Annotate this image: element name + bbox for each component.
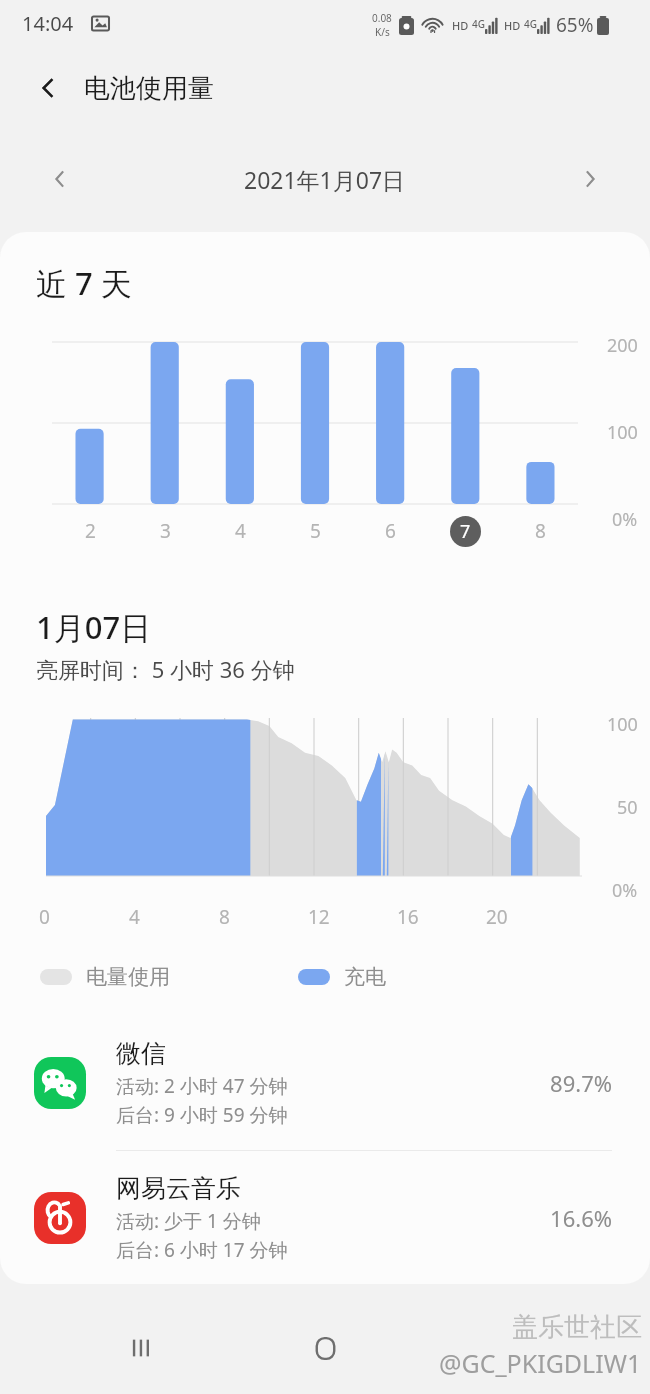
staticText: 16	[397, 904, 419, 930]
staticText: 电量使用	[86, 964, 170, 990]
staticText: HD	[452, 18, 469, 33]
staticText: 2021年1月07日	[244, 164, 406, 195]
staticText: 7	[460, 519, 471, 544]
staticText: 活动: 2 小时 47 分钟	[116, 1073, 288, 1099]
staticText: 5	[310, 518, 321, 544]
staticText: 20	[486, 904, 508, 930]
staticText: 电池使用量	[84, 72, 214, 105]
staticText: 8	[219, 904, 230, 930]
staticText: 1月07日	[36, 606, 152, 648]
staticText: 0.08	[372, 11, 392, 25]
button[interactable]: 前一天	[36, 155, 84, 203]
staticText: 4	[129, 904, 140, 930]
staticText: 4G	[472, 17, 485, 31]
staticText: 50	[617, 795, 638, 820]
staticText: 后台: 9 小时 59 分钟	[116, 1102, 288, 1128]
staticText: 亮屏时间： 5 小时 36 分钟	[36, 654, 295, 684]
staticText: @GC_PKIGDLIW1	[439, 1346, 642, 1380]
staticText: 4G	[524, 17, 537, 31]
staticText: 近 7 天	[36, 262, 132, 304]
staticText: 后台: 6 小时 17 分钟	[116, 1237, 288, 1263]
staticText: 100	[607, 712, 638, 737]
staticText: 微信	[116, 1038, 166, 1069]
button[interactable]: 返回	[26, 66, 70, 110]
staticText: 充电	[344, 964, 386, 990]
staticText: 14:04	[22, 10, 74, 37]
button[interactable]: 返回	[468, 1318, 548, 1378]
staticText: 活动: 少于 1 分钟	[116, 1208, 261, 1234]
button[interactable]: 主屏幕	[285, 1318, 365, 1378]
staticText: 3	[160, 518, 171, 544]
staticText: 0%	[612, 507, 638, 532]
staticText: 16.6%	[550, 1203, 612, 1233]
staticText: 网易云音乐	[116, 1173, 241, 1204]
staticText: 6	[385, 518, 396, 544]
staticText: HD	[504, 18, 521, 33]
staticText: 4	[235, 518, 246, 544]
staticText: 2	[85, 518, 96, 544]
staticText: 65%	[556, 12, 594, 38]
staticText: 0%	[612, 878, 638, 903]
button[interactable]: 后一天	[566, 155, 614, 203]
button[interactable]: 微信	[0, 1016, 650, 1150]
staticText: 100	[607, 420, 638, 445]
staticText: 200	[607, 333, 638, 358]
staticText: 12	[308, 904, 330, 930]
staticText: 0	[39, 904, 50, 930]
staticText: K/s	[375, 25, 390, 39]
button[interactable]: 网易云音乐	[0, 1151, 650, 1284]
staticText: 89.7%	[550, 1068, 612, 1098]
staticText: 8	[535, 518, 546, 544]
staticText: 盖乐世社区	[512, 1311, 642, 1344]
button[interactable]: 最近任务	[103, 1318, 183, 1378]
